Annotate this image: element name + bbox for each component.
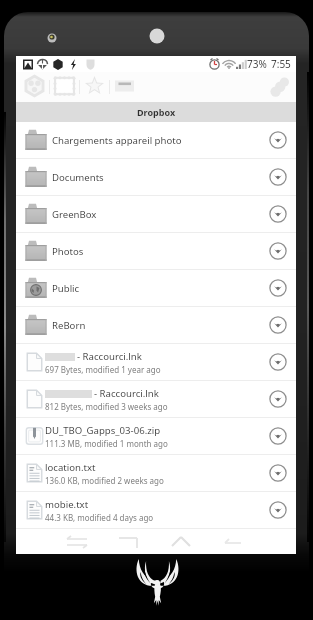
button[interactable]: GreenBox <box>16 196 296 233</box>
staticText: ReBorn <box>52 319 86 332</box>
button[interactable]: - Raccourci.lnk <box>16 381 296 418</box>
button[interactable]: More options <box>265 275 291 301</box>
staticText: - Raccourci.lnk <box>77 350 142 363</box>
button[interactable]: More options <box>265 349 291 375</box>
button[interactable]: Public <box>16 270 296 307</box>
button[interactable]: More options <box>265 238 291 264</box>
staticText: Dropbox <box>137 106 176 118</box>
button[interactable]: Apps <box>20 72 49 102</box>
button[interactable]: mobie.txt <box>16 492 296 529</box>
staticText: - Raccourci.lnk <box>94 387 159 400</box>
staticText: location.txt <box>45 461 96 474</box>
staticText: 7:55 <box>271 57 291 71</box>
staticText: GreenBox <box>52 208 97 221</box>
button[interactable]: More options <box>265 127 291 153</box>
button[interactable]: More options <box>265 423 291 449</box>
button[interactable]: Home <box>161 530 201 554</box>
button[interactable]: More options <box>265 497 291 523</box>
button[interactable]: Favorite <box>80 72 109 102</box>
button[interactable]: More options <box>265 386 291 412</box>
staticText: Documents <box>52 171 104 184</box>
button[interactable]: location.txt <box>16 455 296 492</box>
button[interactable]: Documents <box>16 159 296 196</box>
button[interactable]: Back <box>213 530 253 554</box>
staticText: Chargements appareil photo <box>52 134 182 147</box>
button[interactable]: Card <box>110 72 139 102</box>
button[interactable]: More options <box>265 312 291 338</box>
staticText: 73% <box>247 57 267 71</box>
staticText: Photos <box>52 245 84 258</box>
staticText: 111.3 MB, modified 1 month ago <box>45 438 168 449</box>
button[interactable]: Photos <box>16 233 296 270</box>
staticText: 812 Bytes, modified 3 weeks ago <box>45 401 168 412</box>
button[interactable]: - Raccourci.lnk <box>16 344 296 381</box>
button[interactable]: Frame <box>50 72 79 102</box>
button[interactable]: More options <box>265 201 291 227</box>
button[interactable]: DU_TBO_Gapps_03-06.zip <box>16 418 296 455</box>
button[interactable]: ReBorn <box>16 307 296 344</box>
button[interactable]: Recent apps <box>109 530 149 554</box>
button[interactable]: Chargements appareil photo <box>16 122 296 159</box>
staticText: 136.0 KB, modified 2 weeks ago <box>45 475 164 486</box>
button[interactable]: Attach <box>268 75 292 99</box>
staticText: Public <box>52 282 80 295</box>
button[interactable]: Switch apps <box>57 530 97 554</box>
staticText: 697 Bytes, modified 1 year ago <box>45 364 161 375</box>
staticText: mobie.txt <box>45 498 89 511</box>
button[interactable]: More options <box>265 164 291 190</box>
button[interactable]: More options <box>265 460 291 486</box>
staticText: 44.3 KB, modified 4 days ago <box>45 512 154 523</box>
staticText: DU_TBO_Gapps_03-06.zip <box>45 424 161 437</box>
